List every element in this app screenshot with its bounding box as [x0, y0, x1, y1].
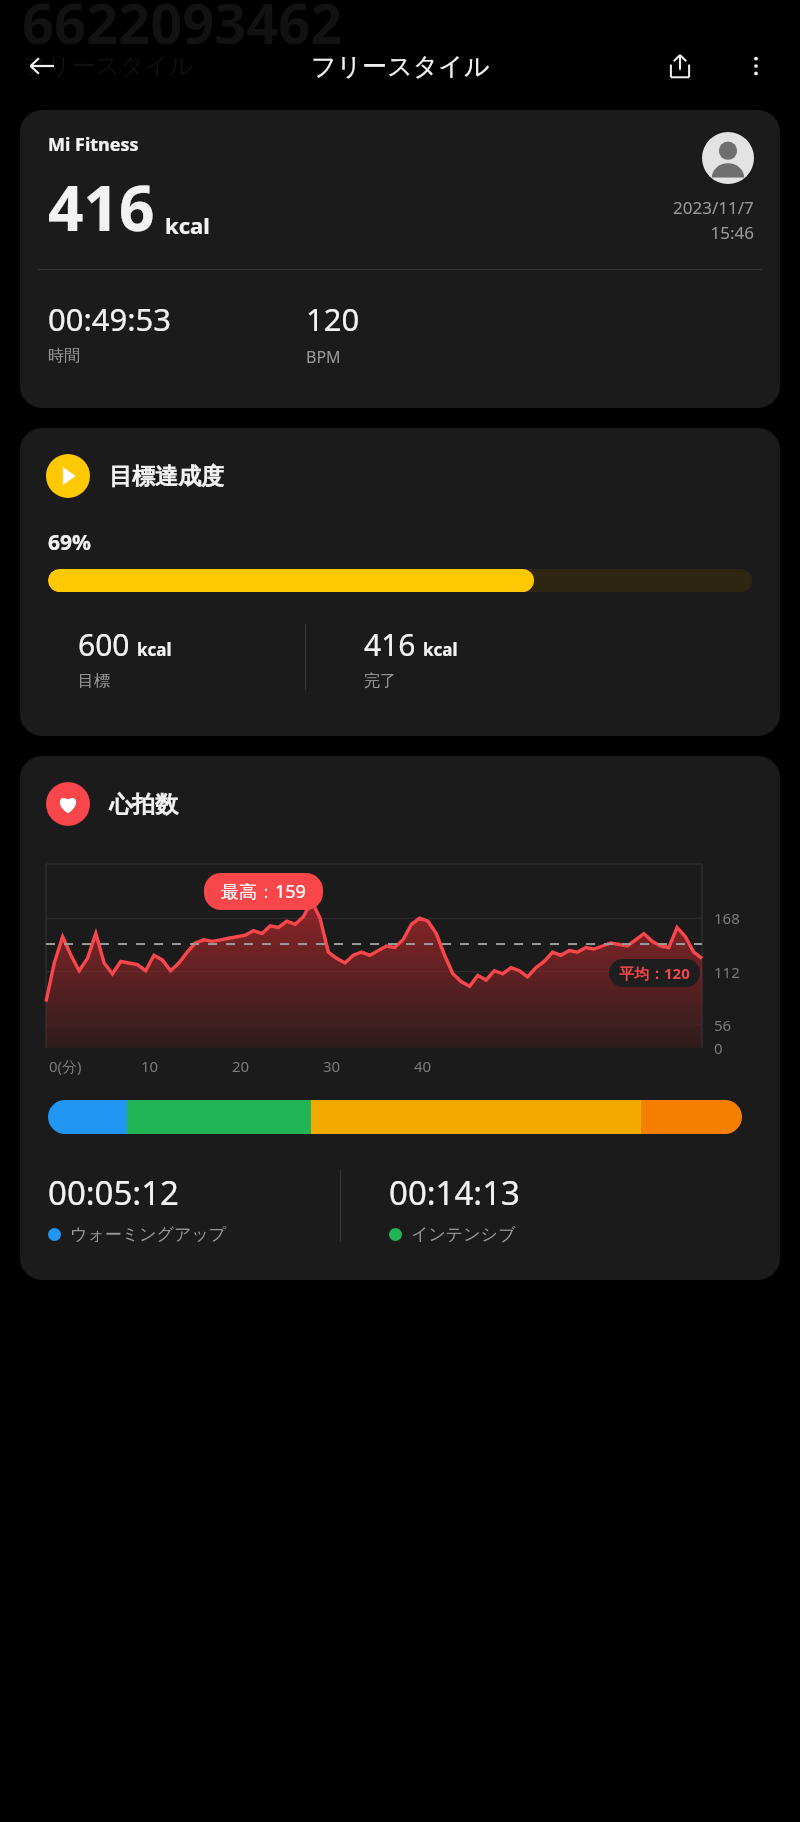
staticText: 416: [364, 624, 416, 665]
staticText: 416: [48, 165, 155, 249]
staticText: 0: [714, 1038, 723, 1058]
staticText: kcal: [137, 638, 172, 661]
staticText: BPM: [306, 346, 341, 368]
button[interactable]: Back: [18, 42, 66, 90]
button[interactable]: Mi Fitness: [20, 110, 780, 408]
staticText: 112: [714, 962, 740, 982]
staticText: kcal: [165, 210, 210, 240]
staticText: フリースタイル: [22, 51, 194, 81]
staticText: 56: [714, 1015, 732, 1035]
staticText: 目標: [78, 671, 110, 691]
button[interactable]: Share: [656, 42, 704, 90]
staticText: 00:49:53: [48, 298, 172, 340]
staticText: Mi Fitness: [48, 132, 139, 157]
staticText: 69%: [48, 528, 91, 557]
button[interactable]: 心拍数: [20, 756, 780, 1280]
staticText: フリースタイル: [311, 51, 490, 82]
staticText: 0(分): [49, 1056, 82, 1076]
staticText: 6622093462: [22, 0, 343, 44]
staticText: 30: [323, 1056, 341, 1076]
staticText: 最高：159: [221, 879, 306, 904]
button[interactable]: Profile: [702, 132, 754, 184]
staticText: 00:05:12: [48, 1170, 179, 1215]
staticText: 600: [78, 624, 130, 665]
staticText: 168: [714, 908, 740, 928]
staticText: 2023/11/7: [673, 196, 754, 219]
staticText: 00:14:13: [389, 1170, 520, 1215]
staticText: kcal: [423, 638, 458, 661]
staticText: 10: [141, 1056, 159, 1076]
staticText: 20: [232, 1056, 250, 1076]
staticText: 心拍数: [109, 790, 178, 819]
staticText: 完了: [364, 671, 396, 691]
staticText: 平均：120: [619, 963, 690, 983]
staticText: 120: [306, 298, 360, 340]
staticText: 目標達成度: [109, 462, 224, 491]
staticText: 15:46: [710, 221, 754, 244]
staticText: ウォーミングアップ: [70, 1224, 227, 1245]
staticText: インテンシブ: [411, 1224, 516, 1245]
staticText: 40: [414, 1056, 432, 1076]
button[interactable]: More options: [732, 42, 780, 90]
button[interactable]: 目標達成度: [20, 428, 780, 736]
staticText: 時間: [48, 346, 80, 366]
